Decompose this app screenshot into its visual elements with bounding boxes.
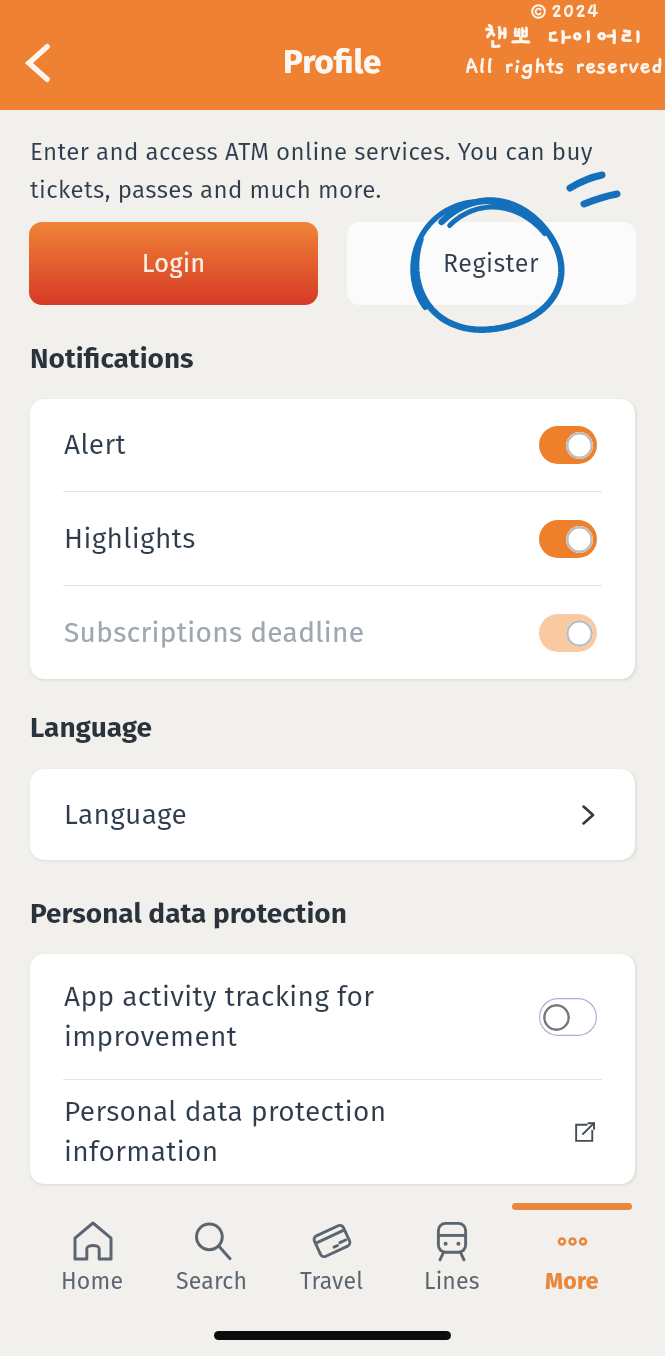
button[interactable]: Toggle off	[539, 998, 597, 1036]
staticText: Travel	[300, 1267, 364, 1295]
button[interactable]: Alert	[30, 399, 635, 491]
staticText: 2024	[551, 0, 599, 22]
button[interactable]: Register	[347, 222, 636, 305]
button[interactable]: Home	[33, 1184, 152, 1304]
button[interactable]: Toggle on	[539, 426, 597, 464]
button[interactable]: Toggle on	[539, 520, 597, 558]
button[interactable]: Travel	[272, 1184, 392, 1304]
staticText: Alert	[64, 428, 539, 462]
button[interactable]: Login	[29, 222, 318, 305]
button[interactable]: Subscriptions deadline	[30, 586, 635, 679]
staticText: Notifications	[30, 342, 194, 376]
staticText: Personal data protection information	[64, 1095, 501, 1169]
button[interactable]: Lines	[392, 1184, 512, 1304]
other: Open external link	[571, 1119, 597, 1145]
button[interactable]: App activity tracking for improvement	[30, 954, 635, 1079]
button[interactable]: Language	[30, 769, 635, 860]
staticText: Highlights	[64, 522, 539, 556]
staticText: All rights reserved	[465, 54, 664, 79]
button[interactable]: More	[512, 1184, 632, 1304]
button[interactable]: Highlights	[30, 492, 635, 585]
staticText: 챈뽀 다이어리	[484, 23, 645, 53]
staticText: App activity tracking for improvement	[64, 980, 519, 1054]
staticText: Search	[176, 1267, 248, 1295]
staticText: Language	[30, 711, 153, 745]
staticText: Subscriptions deadline	[64, 616, 539, 650]
staticText: Login	[142, 249, 206, 279]
button[interactable]: Toggle on	[539, 614, 597, 652]
staticText: More	[545, 1267, 599, 1295]
button[interactable]: Personal data protection information	[30, 1080, 635, 1184]
staticText: Lines	[424, 1267, 480, 1295]
staticText: Enter and access ATM online services. Yo…	[30, 138, 635, 204]
staticText: Home	[61, 1267, 124, 1295]
staticText: Register	[443, 249, 540, 279]
button[interactable]: Search	[152, 1184, 272, 1304]
button[interactable]: Back	[9, 34, 67, 92]
staticText: Personal data protection	[30, 897, 347, 931]
staticText: Language	[64, 798, 581, 832]
staticText: Profile	[283, 42, 382, 82]
